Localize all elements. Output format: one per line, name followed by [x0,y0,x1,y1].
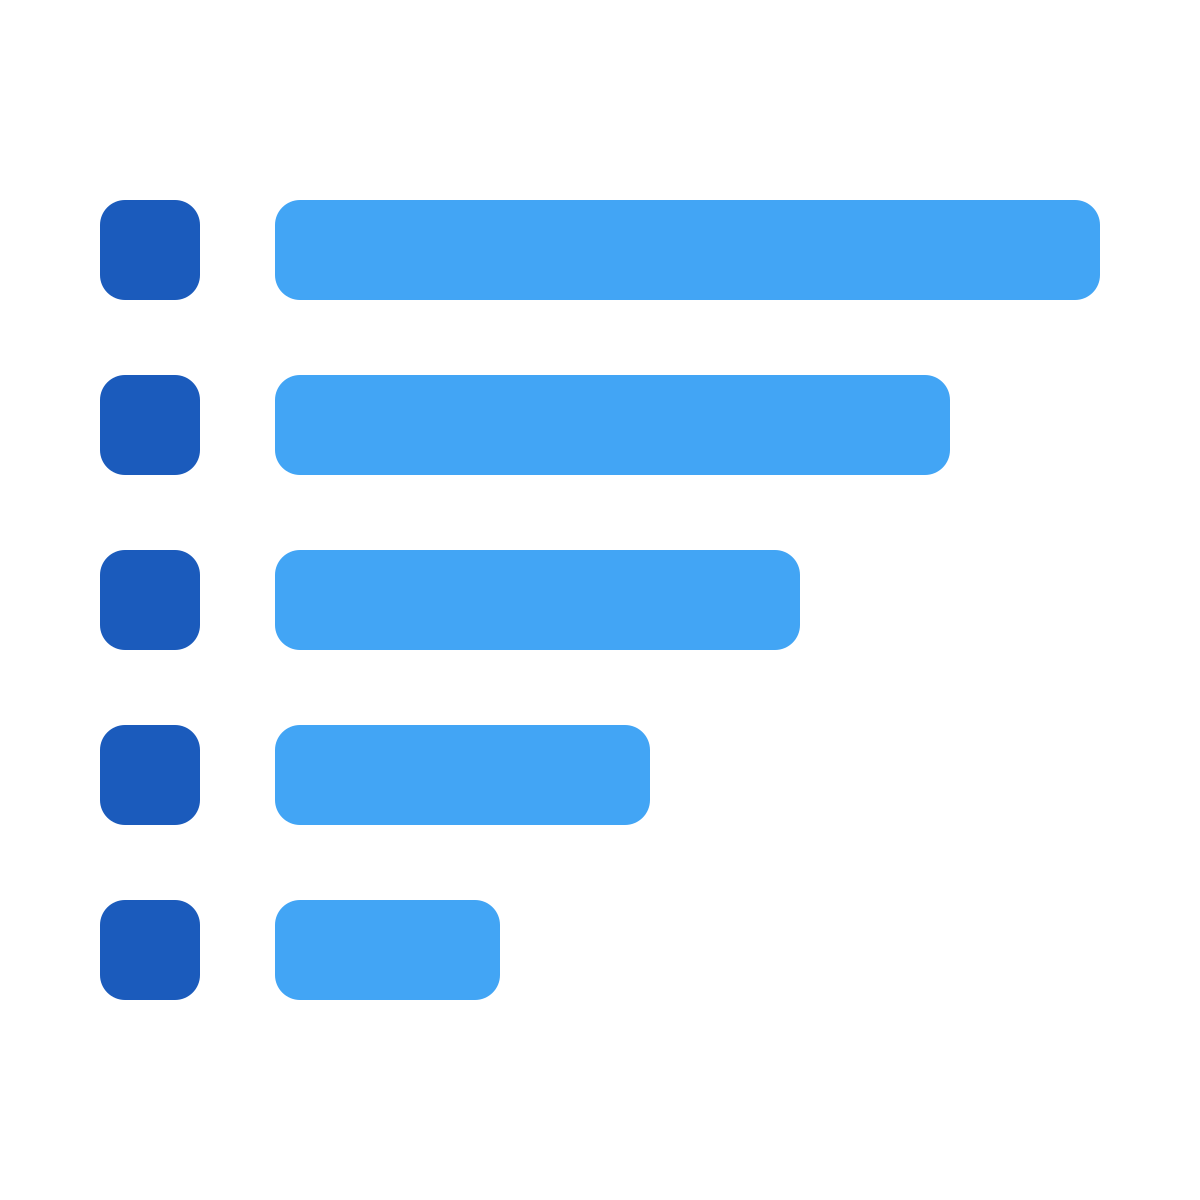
button[interactable]: List item 3 [100,550,1200,650]
button[interactable]: List item 1 [100,200,1200,300]
button[interactable]: List item 2 [100,375,1200,475]
button[interactable]: List item 4 [100,725,1200,825]
button[interactable]: List item 5 [100,900,1200,1000]
